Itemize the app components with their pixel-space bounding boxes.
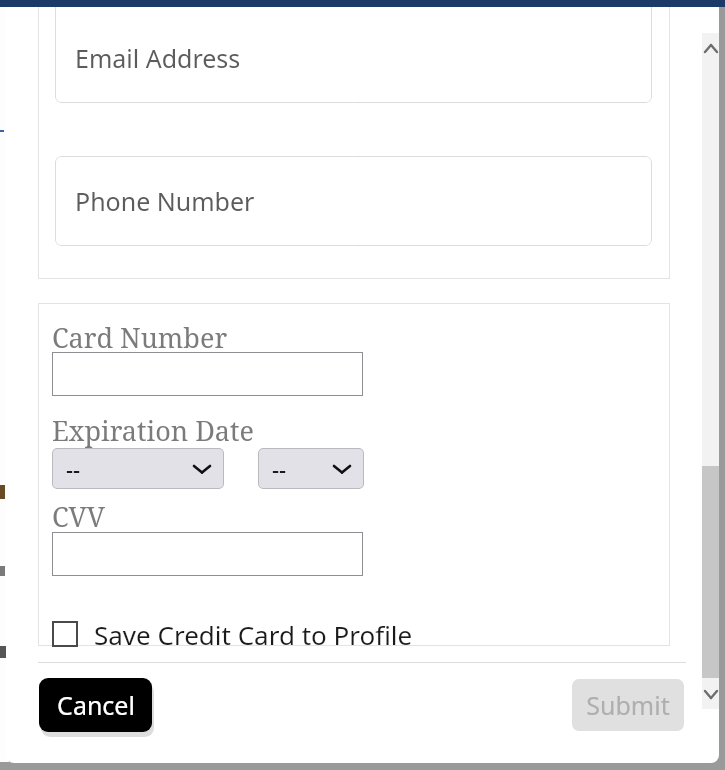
staticText: Expiration Date [52,412,254,449]
staticText: Phone Number [75,184,255,218]
button[interactable] [52,352,363,396]
button[interactable]: Month [52,448,224,489]
staticText: Card Number [52,319,228,356]
button[interactable] [52,532,363,576]
button[interactable]: Submit [572,679,684,731]
staticText: CVV [52,498,106,535]
staticText: Save Credit Card to Profile [94,617,413,652]
staticText: Cancel [57,688,135,722]
staticText: Email Address [75,41,241,75]
button[interactable]: Phone Number [55,156,652,246]
staticText: -- [66,454,81,484]
staticText: -- [272,454,287,484]
button[interactable]: Year [258,448,364,489]
button[interactable]: Email Address [55,7,652,103]
button[interactable]: Save Credit Card to Profile [52,613,419,655]
button[interactable]: Scroll up [702,33,719,63]
button[interactable]: Scroll down [702,679,719,709]
staticText: Submit [586,688,670,722]
button[interactable]: Cancel [39,678,152,732]
